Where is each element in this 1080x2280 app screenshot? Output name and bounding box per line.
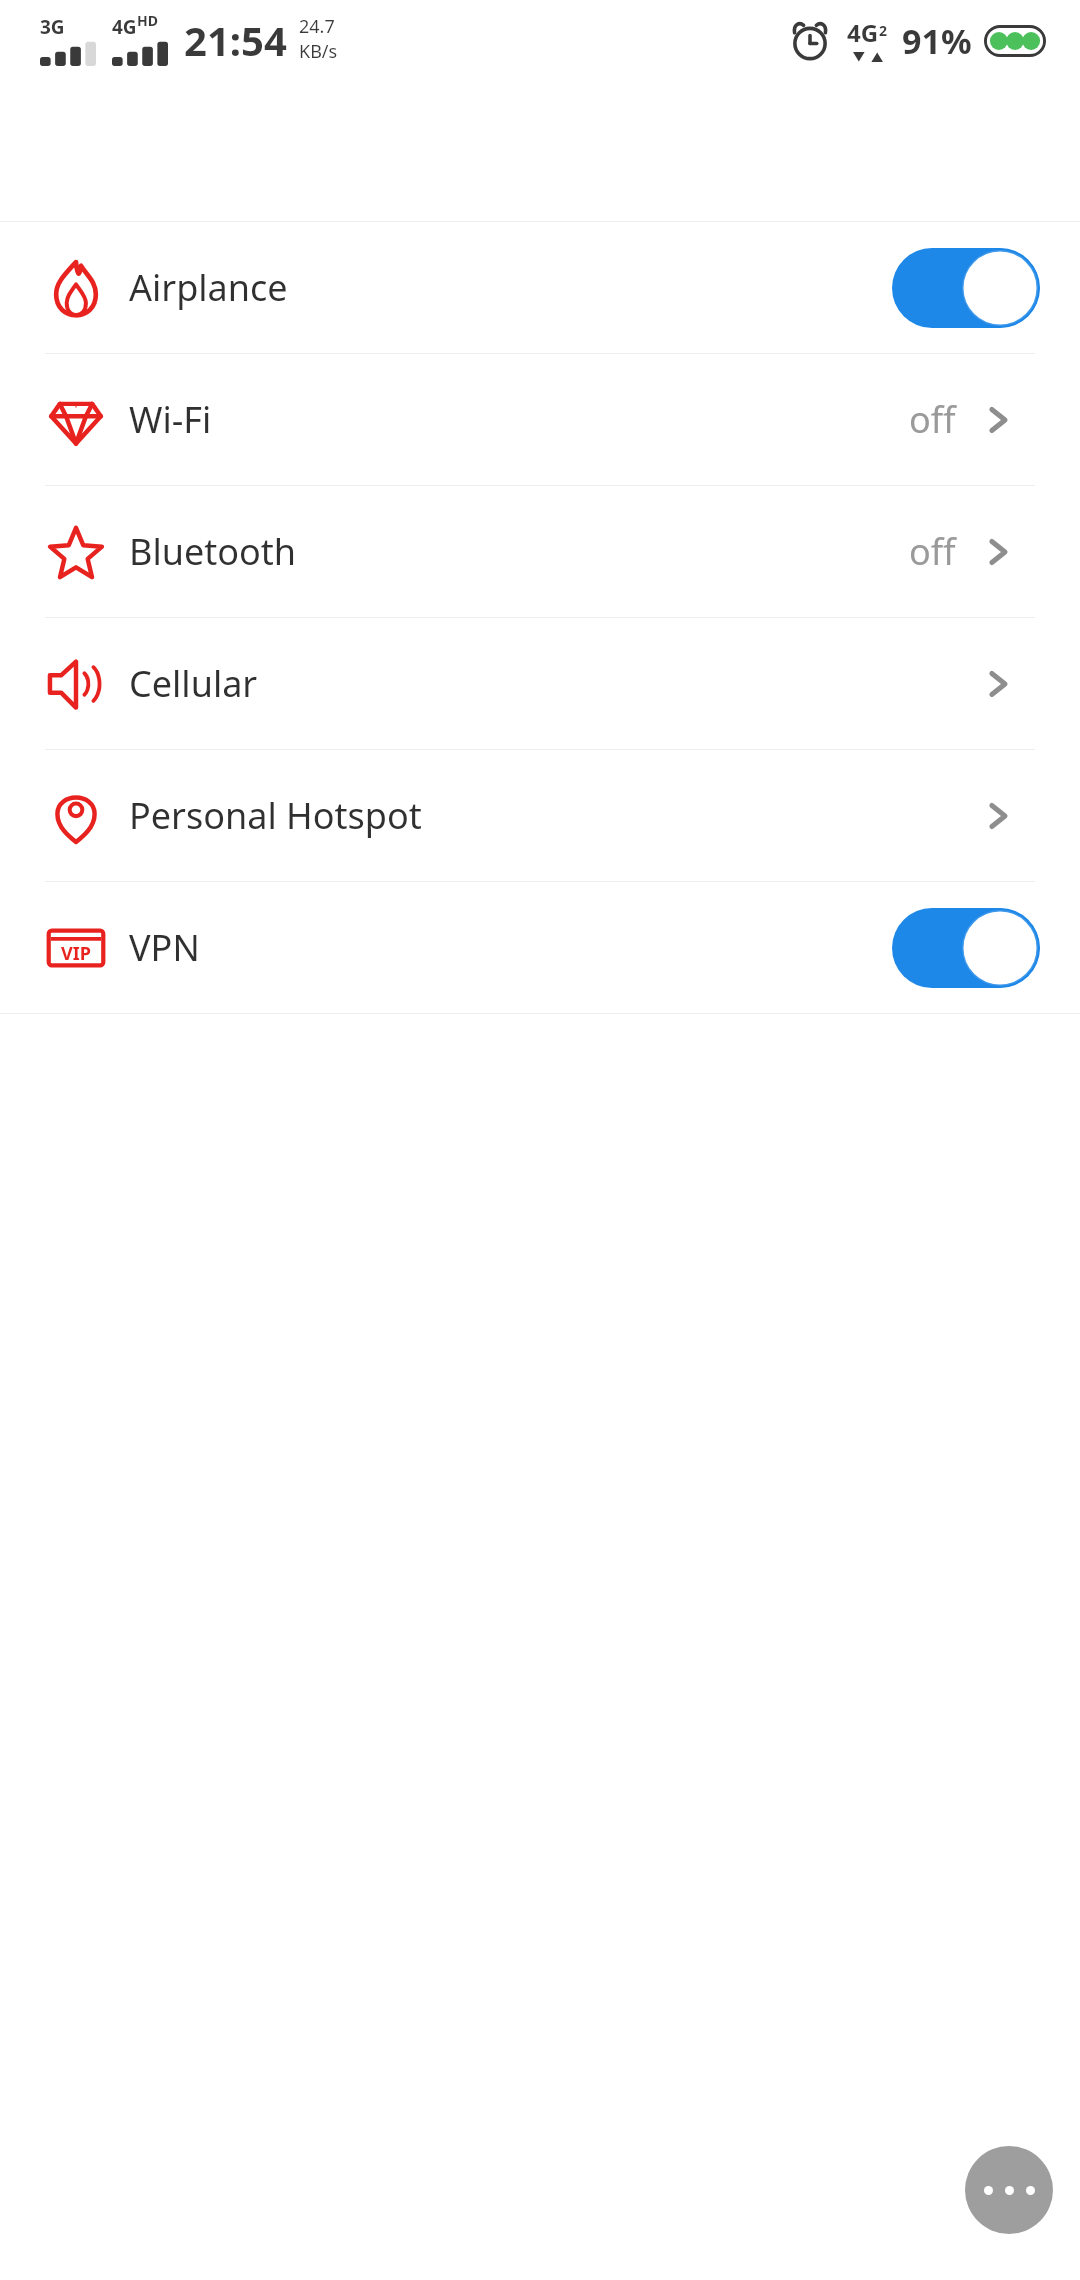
staticText: off (909, 395, 956, 444)
button[interactable]: Cellular (0, 618, 1080, 749)
button[interactable]: Bluetooth (0, 486, 1080, 617)
staticText: Wi-Fi (129, 395, 212, 444)
staticText: Airplance (129, 263, 288, 312)
staticText: 91% (902, 18, 972, 64)
staticText: 4G (112, 14, 137, 40)
staticText: 4G (847, 16, 879, 49)
staticText: 3G (40, 14, 65, 40)
staticText: Cellular (129, 659, 258, 708)
staticText: off (909, 527, 956, 576)
staticText: KB/s (299, 39, 338, 64)
staticText: VPN (129, 923, 200, 972)
other: Battery 91 percent (984, 25, 1046, 57)
staticText: VIP (61, 941, 91, 966)
button[interactable]: Toggle (892, 248, 1040, 328)
button[interactable]: More options (965, 2146, 1053, 2234)
button[interactable]: VIP (0, 882, 1080, 1013)
button[interactable]: Personal Hotspot (0, 750, 1080, 881)
button[interactable]: Toggle (892, 908, 1040, 988)
other: Alarm (789, 20, 831, 62)
staticText: Bluetooth (129, 527, 297, 576)
staticText: HD (137, 11, 158, 30)
staticText: 24.7 (299, 14, 335, 39)
staticText: Personal Hotspot (129, 791, 422, 840)
button[interactable]: Airplance (0, 222, 1080, 353)
staticText: 2 (879, 21, 888, 40)
staticText: 21:54 (184, 13, 287, 67)
button[interactable]: Wi-Fi (0, 354, 1080, 485)
